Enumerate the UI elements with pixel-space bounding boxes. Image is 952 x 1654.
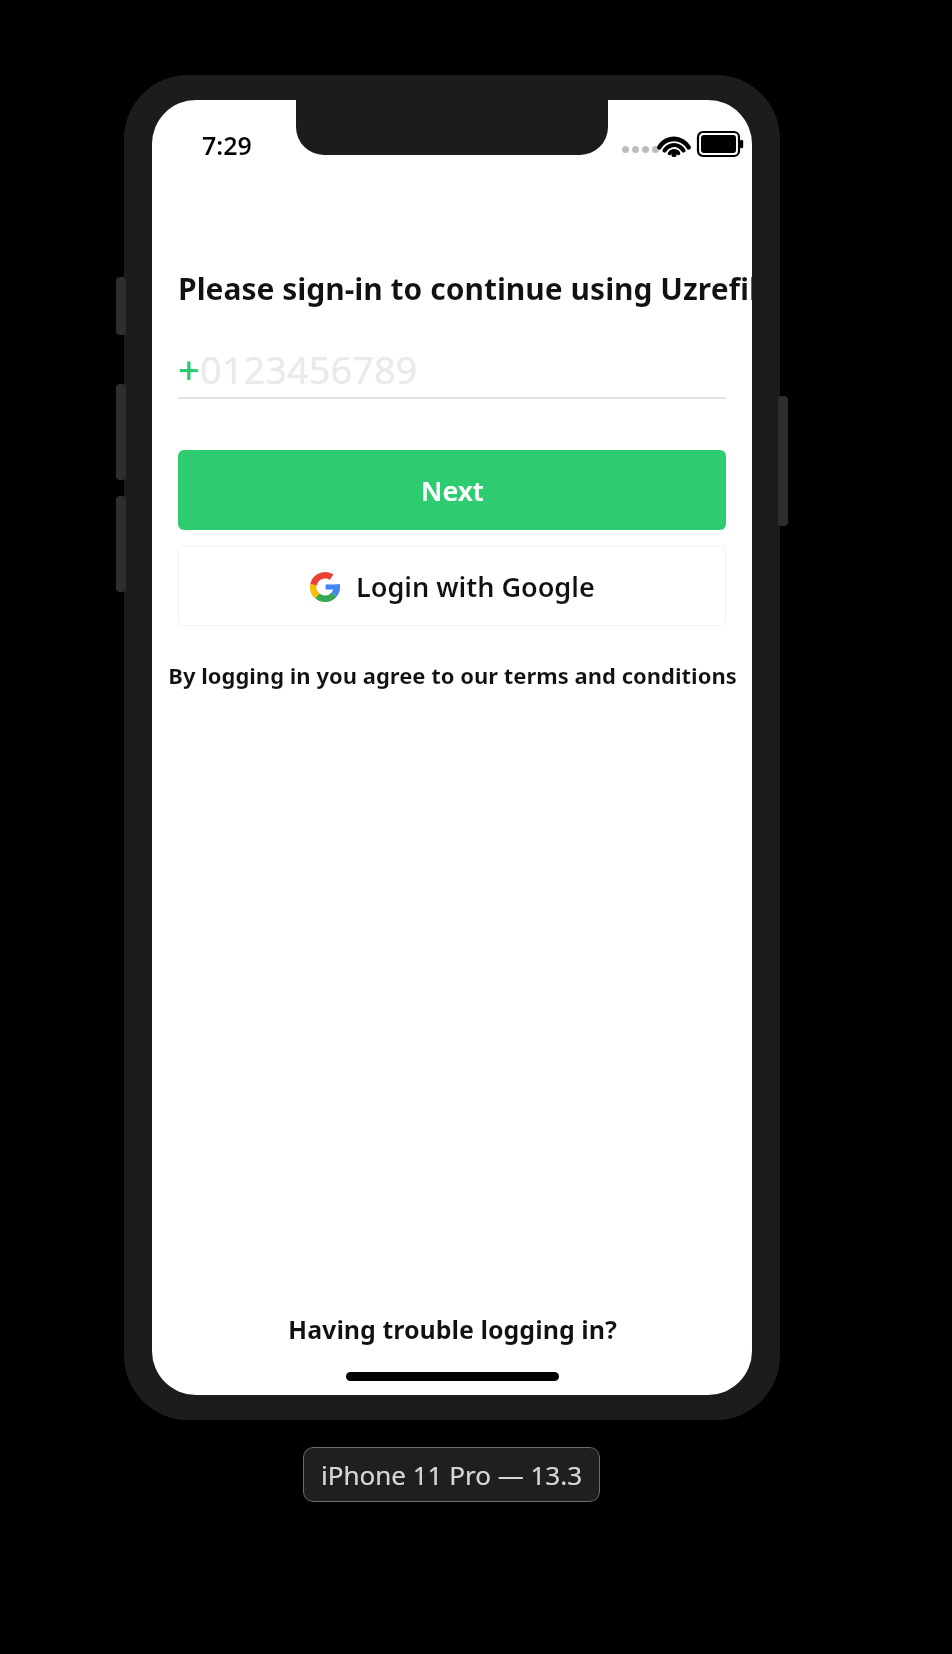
button[interactable]: By logging in you agree to our terms and… bbox=[152, 652, 752, 698]
staticText: By logging in you agree to our terms and… bbox=[168, 660, 737, 690]
staticText: Please sign-in to continue using Uzrefil… bbox=[178, 268, 752, 309]
staticText: 7:29 bbox=[202, 128, 252, 162]
button[interactable]: Next bbox=[178, 450, 726, 530]
button[interactable]: Google bbox=[178, 546, 726, 626]
button[interactable]: + bbox=[178, 338, 726, 400]
staticText: + bbox=[178, 343, 200, 395]
staticText: iPhone 11 Pro — 13.3 bbox=[321, 1457, 583, 1492]
staticText: 0123456789 bbox=[200, 343, 418, 395]
staticText: Login with Google bbox=[356, 568, 595, 605]
button[interactable]: Having trouble logging in? bbox=[152, 1305, 752, 1353]
staticText: Having trouble logging in? bbox=[288, 1312, 617, 1346]
staticText: Next bbox=[421, 472, 484, 509]
other: Google bbox=[310, 572, 340, 602]
